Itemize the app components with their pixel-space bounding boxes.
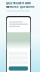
staticText: Practice smarter, not harder	[6, 10, 30, 12]
staticText: Quiz Yourself with	[6, 2, 31, 5]
staticText: exam-like questions	[6, 5, 34, 8]
